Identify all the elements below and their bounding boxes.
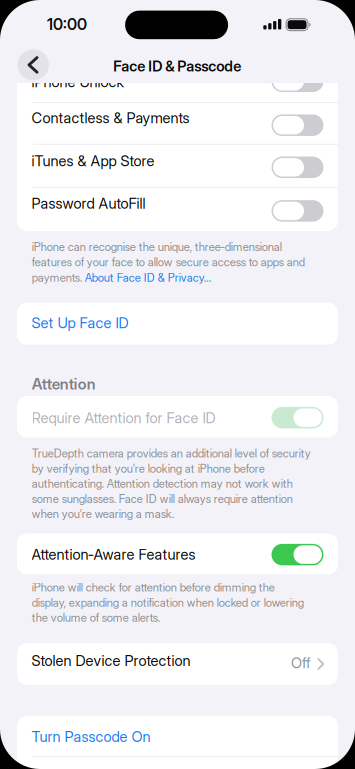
staticText: payments. — [32, 271, 85, 284]
staticText: when you’re wearing a mask. — [32, 507, 174, 521]
button[interactable]: Password AutoFill — [271, 200, 323, 222]
staticText: display, expanding a notification when l… — [32, 596, 304, 609]
staticText: Password AutoFill — [31, 195, 145, 212]
staticText: by verifying that you’re looking at iPho… — [32, 462, 265, 475]
staticText: Require Attention for Face ID — [31, 409, 215, 426]
staticText: features of your face to allow secure ac… — [32, 255, 305, 269]
staticText: some sunglasses. Face ID will always req… — [32, 492, 293, 505]
button[interactable]: Turn Passcode On — [17, 716, 338, 769]
staticText: TrueDepth camera provides an additional … — [32, 447, 311, 460]
staticText: iTunes & App Store — [31, 152, 154, 169]
button[interactable]: Stolen Device Protection — [17, 643, 338, 685]
staticText: iPhone will check for attention before d… — [32, 581, 275, 594]
staticText: Face ID & Passcode — [113, 57, 241, 75]
button[interactable]: Contactless & Payments — [271, 114, 323, 136]
staticText: Contactless & Payments — [31, 109, 189, 126]
staticText: the volume of some alerts. — [32, 611, 160, 624]
staticText: iPhone Unlock — [31, 73, 123, 91]
button[interactable]: Set Up Face ID — [17, 303, 338, 345]
staticText: authenticating. Attention detection may … — [32, 477, 293, 490]
button[interactable]: About Face ID & Privacy… — [85, 271, 211, 284]
staticText: iPhone can recognise the unique, three‑d… — [32, 240, 282, 254]
button[interactable]: iPhone Unlock — [271, 70, 323, 92]
staticText: Stolen Device Protection — [31, 652, 190, 669]
button[interactable]: iTunes & App Store — [271, 157, 323, 178]
staticText: Turn Passcode On — [31, 728, 150, 745]
staticText: Off — [291, 654, 310, 671]
staticText: About Face ID & Privacy… — [85, 271, 211, 284]
staticText: Set Up Face ID — [31, 314, 128, 332]
staticText: Attention‑Aware Features — [31, 546, 195, 563]
button[interactable]: Back — [18, 49, 49, 81]
button[interactable]: Attention-Aware Features — [271, 544, 323, 565]
staticText: 10:00 — [47, 15, 87, 34]
staticText: Attention — [32, 375, 96, 393]
